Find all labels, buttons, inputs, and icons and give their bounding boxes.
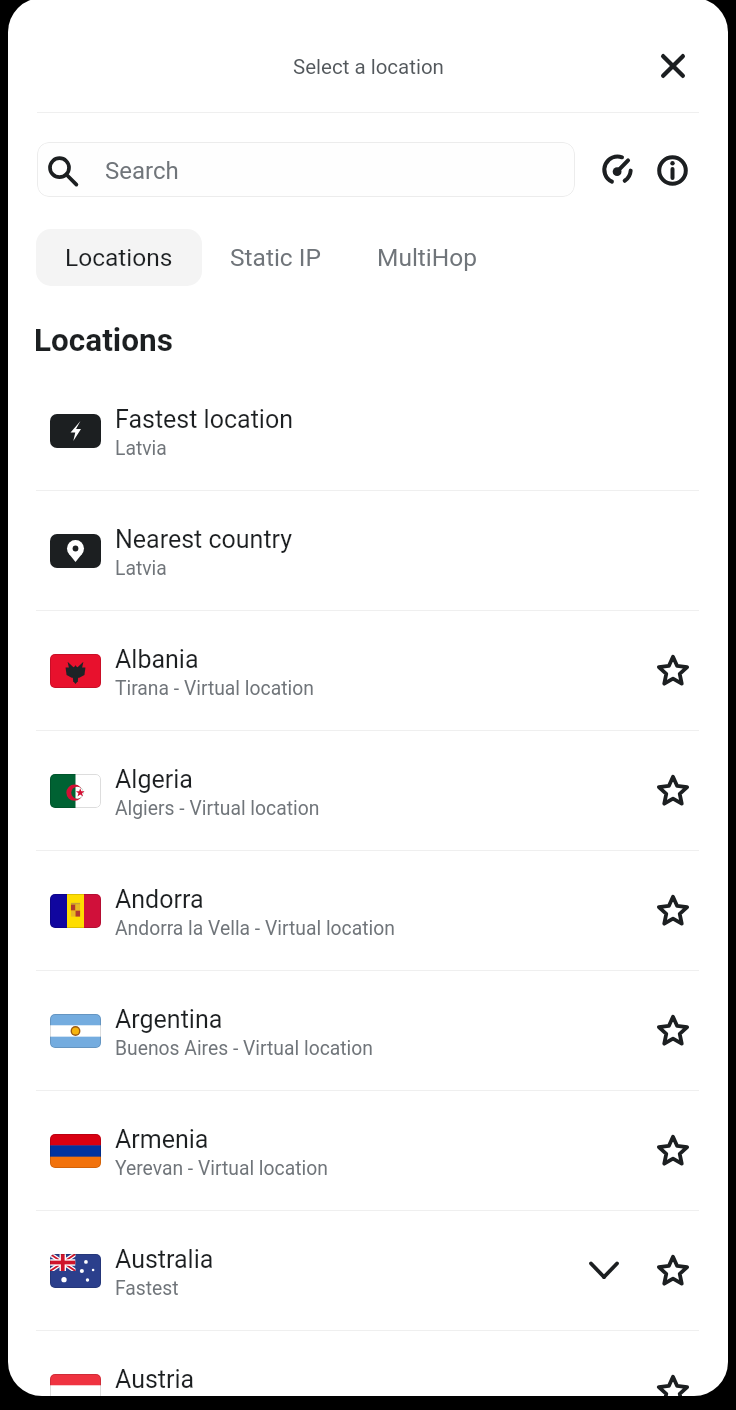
- button[interactable]: Armenia: [8, 1091, 727, 1210]
- staticText: Austria: [115, 1365, 195, 1394]
- staticText: Fastest location: [115, 405, 293, 434]
- button[interactable]: Locations: [36, 229, 202, 286]
- staticText: Select a location: [293, 55, 444, 79]
- staticText: Algiers - Virtual location: [115, 797, 320, 820]
- staticText: Locations: [65, 243, 173, 272]
- staticText: Algeria: [115, 765, 193, 794]
- button[interactable]: Add to favourites: [644, 1122, 702, 1180]
- button[interactable]: Add to favourites: [644, 1002, 702, 1060]
- staticText: Albania: [115, 645, 199, 674]
- button[interactable]: Close: [649, 42, 697, 90]
- button[interactable]: Expand: [575, 1242, 633, 1300]
- staticText: Andorra: [115, 885, 204, 914]
- staticText: Australia: [115, 1245, 214, 1274]
- staticText: Argentina: [115, 1005, 223, 1034]
- staticText: Search: [105, 157, 179, 185]
- button[interactable]: Static IP: [202, 229, 349, 286]
- button[interactable]: Information: [648, 146, 696, 194]
- button[interactable]: Add to favourites: [644, 762, 702, 820]
- button[interactable]: Speed test: [593, 146, 641, 194]
- button[interactable]: Nearest country: [8, 491, 727, 610]
- button[interactable]: Search: [37, 142, 575, 197]
- staticText: Buenos Aires - Virtual location: [115, 1037, 373, 1060]
- button[interactable]: Algeria: [8, 731, 727, 850]
- button[interactable]: Add to favourites: [644, 1362, 702, 1396]
- button[interactable]: Add to favourites: [644, 882, 702, 940]
- button[interactable]: Albania: [8, 611, 727, 730]
- button[interactable]: Add to favourites: [644, 1242, 702, 1300]
- button[interactable]: Andorra: [8, 851, 727, 970]
- button[interactable]: Fastest location: [8, 371, 727, 490]
- button[interactable]: Australia: [8, 1211, 727, 1330]
- staticText: Latvia: [115, 557, 167, 580]
- button[interactable]: Austria: [8, 1331, 727, 1396]
- staticText: Nearest country: [115, 525, 293, 554]
- button[interactable]: MultiHop: [349, 229, 506, 286]
- staticText: Andorra la Vella - Virtual location: [115, 917, 395, 940]
- staticText: Fastest: [115, 1277, 179, 1300]
- button[interactable]: Add to favourites: [644, 642, 702, 700]
- staticText: Locations: [34, 322, 173, 359]
- button[interactable]: Argentina: [8, 971, 727, 1090]
- staticText: Tirana - Virtual location: [115, 677, 314, 700]
- staticText: Latvia: [115, 437, 167, 460]
- staticText: MultiHop: [377, 243, 478, 272]
- staticText: Yerevan - Virtual location: [115, 1157, 328, 1180]
- staticText: Armenia: [115, 1125, 209, 1154]
- staticText: Static IP: [230, 243, 321, 272]
